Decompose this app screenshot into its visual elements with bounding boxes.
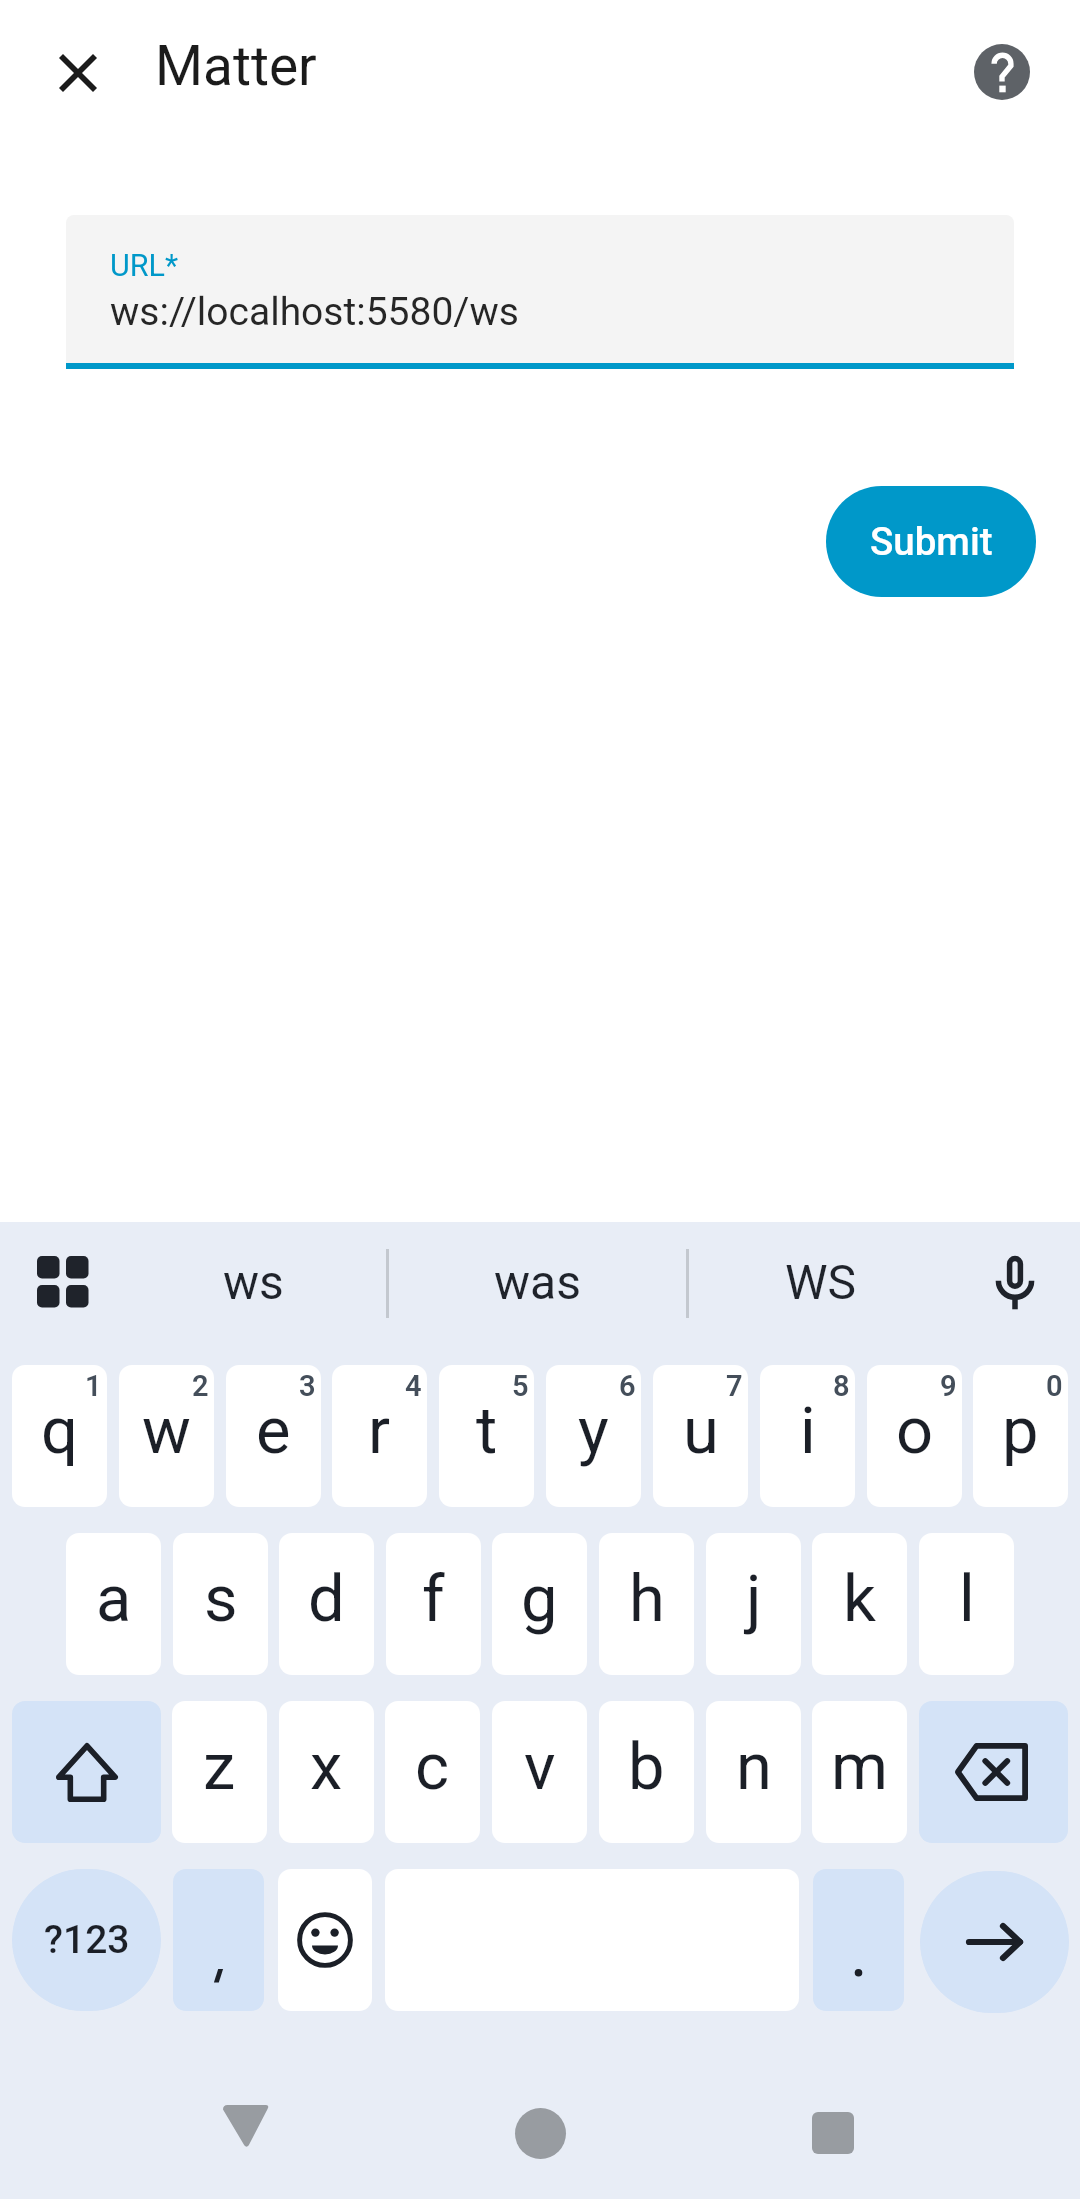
button[interactable]: Shift bbox=[12, 1701, 161, 1843]
staticText: r bbox=[368, 1393, 391, 1469]
staticText: was bbox=[494, 1254, 581, 1310]
button[interactable]: x bbox=[279, 1701, 374, 1843]
button[interactable]: f bbox=[386, 1533, 481, 1675]
staticText: g bbox=[521, 1561, 558, 1637]
button[interactable]: Recent apps bbox=[773, 2073, 893, 2193]
button[interactable]: Submit bbox=[826, 486, 1036, 597]
staticText: 4 bbox=[405, 1369, 422, 1403]
button[interactable]: Keyboard options bbox=[8, 1227, 118, 1337]
staticText: e bbox=[256, 1393, 291, 1469]
button[interactable]: WS bbox=[690, 1222, 951, 1342]
staticText: URL* bbox=[110, 248, 179, 284]
staticText: i bbox=[800, 1393, 816, 1469]
button[interactable]: h bbox=[599, 1533, 694, 1675]
button[interactable]: s bbox=[173, 1533, 268, 1675]
button[interactable]: w bbox=[119, 1365, 214, 1507]
staticText: 5 bbox=[512, 1369, 529, 1403]
staticText: ws://localhost:5580/ws bbox=[110, 289, 519, 335]
button[interactable]: v bbox=[492, 1701, 587, 1843]
button[interactable]: o bbox=[867, 1365, 962, 1507]
staticText: 9 bbox=[940, 1369, 957, 1403]
button[interactable]: a bbox=[66, 1533, 161, 1675]
button[interactable]: t bbox=[439, 1365, 534, 1507]
button[interactable]: Home bbox=[480, 2073, 600, 2193]
staticText: c bbox=[415, 1729, 450, 1805]
button[interactable]: Back bbox=[186, 2066, 306, 2186]
button[interactable]: d bbox=[279, 1533, 374, 1675]
staticText: Submit bbox=[870, 519, 993, 564]
button[interactable]: Comma bbox=[173, 1869, 264, 2011]
staticText: m bbox=[831, 1729, 889, 1805]
button[interactable]: Enter bbox=[920, 1871, 1069, 2013]
button[interactable]: j bbox=[706, 1533, 801, 1675]
button[interactable]: b bbox=[599, 1701, 694, 1843]
staticText: v bbox=[524, 1729, 556, 1805]
staticText: 7 bbox=[726, 1369, 743, 1403]
button[interactable]: ws bbox=[130, 1222, 377, 1342]
staticText: 0 bbox=[1046, 1369, 1063, 1403]
staticText: t bbox=[476, 1393, 498, 1469]
staticText: ws bbox=[223, 1254, 284, 1310]
staticText: k bbox=[843, 1561, 876, 1637]
button[interactable]: URL text field bbox=[66, 215, 1014, 369]
staticText: ?123 bbox=[44, 1917, 130, 1963]
staticText: q bbox=[41, 1393, 78, 1469]
button[interactable]: i bbox=[760, 1365, 855, 1507]
staticText: p bbox=[1002, 1393, 1039, 1469]
staticText: n bbox=[736, 1729, 772, 1805]
staticText: z bbox=[203, 1729, 236, 1805]
button[interactable]: Symbols bbox=[12, 1869, 161, 2011]
staticText: Matter bbox=[155, 34, 317, 98]
button[interactable]: Emoji bbox=[278, 1869, 372, 2011]
button[interactable]: Help bbox=[954, 24, 1050, 120]
button[interactable]: c bbox=[385, 1701, 480, 1843]
staticText: o bbox=[896, 1393, 934, 1469]
staticText: b bbox=[628, 1729, 665, 1805]
button[interactable]: g bbox=[492, 1533, 587, 1675]
staticText: f bbox=[422, 1561, 445, 1637]
staticText: w bbox=[142, 1393, 191, 1469]
staticText: WS bbox=[785, 1254, 857, 1310]
button[interactable]: n bbox=[706, 1701, 801, 1843]
button[interactable]: Voice input bbox=[960, 1227, 1070, 1337]
button[interactable]: Period bbox=[813, 1869, 904, 2011]
staticText: 6 bbox=[619, 1369, 636, 1403]
button[interactable]: r bbox=[332, 1365, 427, 1507]
staticText: l bbox=[959, 1561, 975, 1637]
staticText: h bbox=[629, 1561, 665, 1637]
staticText: y bbox=[578, 1393, 609, 1469]
button[interactable]: k bbox=[812, 1533, 907, 1675]
staticText: 3 bbox=[299, 1369, 316, 1403]
staticText: x bbox=[310, 1729, 343, 1805]
staticText: 2 bbox=[192, 1369, 209, 1403]
button[interactable]: y bbox=[546, 1365, 641, 1507]
button[interactable]: was bbox=[388, 1222, 687, 1342]
button[interactable]: m bbox=[812, 1701, 907, 1843]
staticText: j bbox=[746, 1561, 762, 1637]
staticText: a bbox=[96, 1561, 132, 1637]
staticText: 1 bbox=[85, 1369, 102, 1403]
button[interactable]: Backspace bbox=[919, 1701, 1068, 1843]
button[interactable]: Close bbox=[30, 25, 126, 121]
staticText: d bbox=[308, 1561, 345, 1637]
button[interactable]: e bbox=[226, 1365, 321, 1507]
button[interactable]: u bbox=[653, 1365, 748, 1507]
button[interactable]: p bbox=[973, 1365, 1068, 1507]
button[interactable]: l bbox=[919, 1533, 1014, 1675]
button[interactable]: q bbox=[12, 1365, 107, 1507]
button[interactable]: z bbox=[172, 1701, 267, 1843]
staticText: s bbox=[204, 1561, 238, 1637]
staticText: 8 bbox=[833, 1369, 850, 1403]
staticText: u bbox=[683, 1393, 719, 1469]
